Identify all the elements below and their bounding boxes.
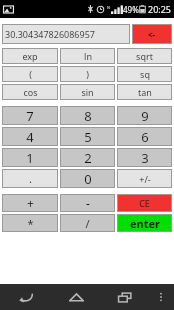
staticText: 2 [84,149,92,167]
button[interactable]: enter [117,214,172,232]
staticText: cos [23,86,38,98]
staticText: 8 [84,107,92,125]
staticText: 5 [84,128,92,146]
staticText: CE [139,197,150,209]
button[interactable]: Recent apps [102,284,147,310]
button[interactable]: 3 [117,148,172,167]
staticText: sq [140,68,150,80]
button[interactable]: Home [51,284,102,310]
button[interactable]: 9 [117,106,172,125]
button[interactable]: ) [60,66,115,82]
staticText: ) [86,68,89,80]
button[interactable]: 5 [60,127,115,146]
staticText: <- [148,29,156,40]
staticText: 20:25 [148,3,172,15]
staticText: sqrt [136,50,153,62]
staticText: ᴺ [107,5,110,13]
button[interactable]: +/- [117,169,172,188]
staticText: 6 [141,128,149,146]
staticText: sin [81,86,94,98]
button[interactable]: 8 [60,106,115,125]
staticText: 49% [123,4,139,15]
button[interactable]: Backspace [132,24,172,44]
button[interactable]: 0 [60,169,115,188]
button[interactable]: + [2,194,58,212]
staticText: +/- [139,173,151,185]
staticText: 3 [141,149,149,167]
staticText: - [86,195,90,211]
staticText: / [85,216,90,231]
button[interactable]: . [2,169,58,188]
button[interactable]: / [60,214,115,232]
button[interactable]: - [60,194,115,212]
button[interactable]: sq [117,66,172,82]
staticText: 4 [26,128,34,146]
button[interactable]: 7 [2,106,58,125]
staticText: ln [84,50,92,62]
button[interactable]: 4 [2,127,58,146]
button[interactable]: sin [60,84,115,100]
button[interactable]: 2 [60,148,115,167]
button[interactable]: CE [117,194,172,212]
staticText: . [29,171,32,186]
button[interactable]: sqrt [117,48,172,64]
button[interactable]: * [2,214,58,232]
staticText: enter [130,216,160,231]
button[interactable]: More options [147,284,174,310]
staticText: 0 [84,170,92,188]
button[interactable]: 1 [2,148,58,167]
button[interactable]: exp [2,48,58,64]
staticText: 7 [26,107,34,125]
button[interactable]: 30.304347826086957 [2,24,130,44]
staticText: 30.304347826086957 [5,28,95,40]
button[interactable]: Back [0,284,51,310]
staticText: exp [22,50,38,62]
staticText: + [27,195,34,211]
button[interactable]: cos [2,84,58,100]
staticText: tan [138,86,152,98]
staticText: 9 [141,107,149,125]
staticText: 1 [26,149,34,167]
staticText: ( [29,68,32,80]
button[interactable]: 6 [117,127,172,146]
button[interactable]: ( [2,66,58,82]
button[interactable]: ln [60,48,115,64]
button[interactable]: tan [117,84,172,100]
staticText: * [27,216,34,231]
